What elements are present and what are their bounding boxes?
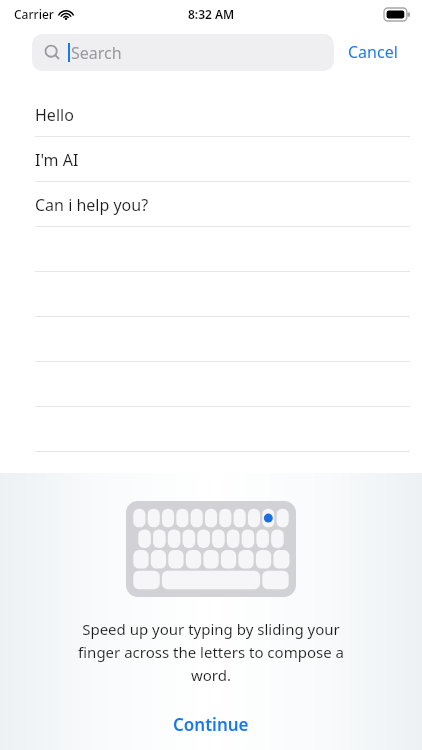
button[interactable]	[0, 362, 422, 407]
button[interactable]: Hello	[0, 92, 422, 137]
staticText: Cancel	[348, 41, 398, 63]
button[interactable]	[0, 227, 422, 272]
staticText: Search	[71, 42, 122, 64]
button[interactable]: Cancel	[334, 35, 404, 69]
staticText: 8:32 AM	[188, 6, 235, 22]
staticText: Speed up your typing by sliding your fin…	[61, 619, 361, 685]
button[interactable]: I'm AI	[0, 137, 422, 182]
staticText: Hello	[35, 104, 74, 126]
staticText: I'm AI	[35, 149, 79, 171]
button[interactable]	[0, 272, 422, 317]
button[interactable]: Continue	[145, 705, 277, 744]
staticText: Can i help you?	[35, 194, 149, 216]
button[interactable]	[0, 317, 422, 362]
staticText: Carrier	[14, 6, 54, 22]
button[interactable]	[0, 452, 422, 497]
button[interactable]	[0, 407, 422, 452]
button[interactable]: Search	[32, 34, 334, 71]
button[interactable]: Can i help you?	[0, 182, 422, 227]
staticText: Continue	[173, 713, 249, 736]
